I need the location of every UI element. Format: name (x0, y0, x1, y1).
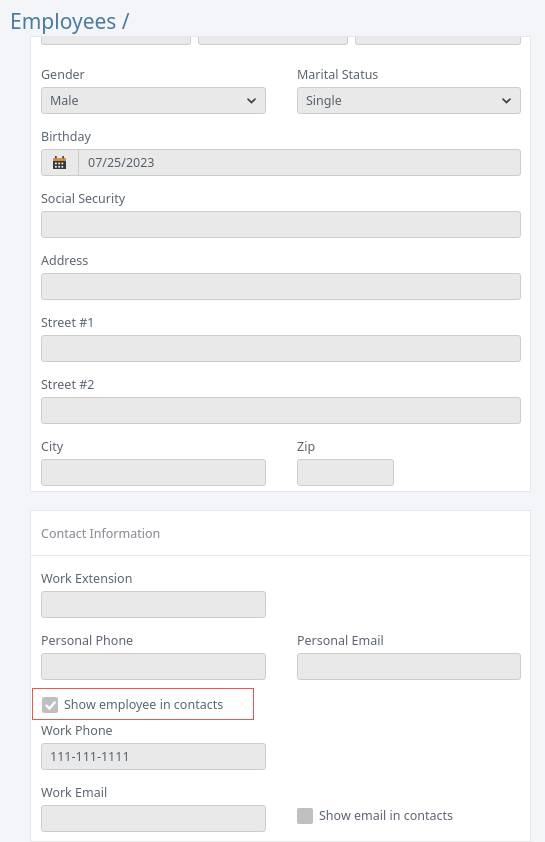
button[interactable] (41, 211, 521, 238)
button[interactable] (41, 397, 521, 424)
staticText: Employees / (10, 7, 130, 36)
staticText: Street #2 (41, 376, 95, 393)
staticText: Show employee in contacts (64, 696, 224, 713)
button[interactable] (41, 273, 521, 300)
button[interactable]: 111-111-1111 (41, 743, 266, 770)
staticText: Contact Information (41, 525, 161, 542)
staticText: Address (41, 252, 89, 269)
button[interactable] (41, 653, 266, 680)
staticText: Work Extension (41, 570, 133, 587)
button[interactable] (41, 335, 521, 362)
staticText: Personal Email (297, 632, 384, 649)
button[interactable] (297, 653, 521, 680)
button[interactable] (297, 459, 394, 486)
button[interactable] (41, 459, 266, 486)
staticText: Work Phone (41, 722, 113, 739)
button[interactable] (41, 805, 266, 832)
staticText: Birthday (41, 128, 91, 145)
staticText: Street #1 (41, 314, 95, 331)
staticText: Gender (41, 66, 85, 83)
staticText: 111-111-1111 (50, 748, 130, 765)
button[interactable]: Single (297, 87, 521, 114)
staticText: 07/25/2023 (88, 154, 155, 171)
staticText: Zip (297, 438, 316, 455)
button[interactable]: Show employee in contacts (42, 696, 224, 713)
button[interactable]: 07/25/2023 (41, 149, 521, 176)
staticText: Social Security (41, 190, 126, 207)
staticText: Marital Status (297, 66, 379, 83)
staticText: Single (306, 92, 342, 109)
staticText: Personal Phone (41, 632, 134, 649)
staticText: Show email in contacts (319, 807, 453, 824)
button[interactable]: Show email in contacts (297, 807, 453, 824)
button[interactable]: Male (41, 87, 266, 114)
staticText: City (41, 438, 64, 455)
staticText: Work Email (41, 784, 108, 801)
staticText: Male (50, 92, 79, 109)
button[interactable] (41, 591, 266, 618)
